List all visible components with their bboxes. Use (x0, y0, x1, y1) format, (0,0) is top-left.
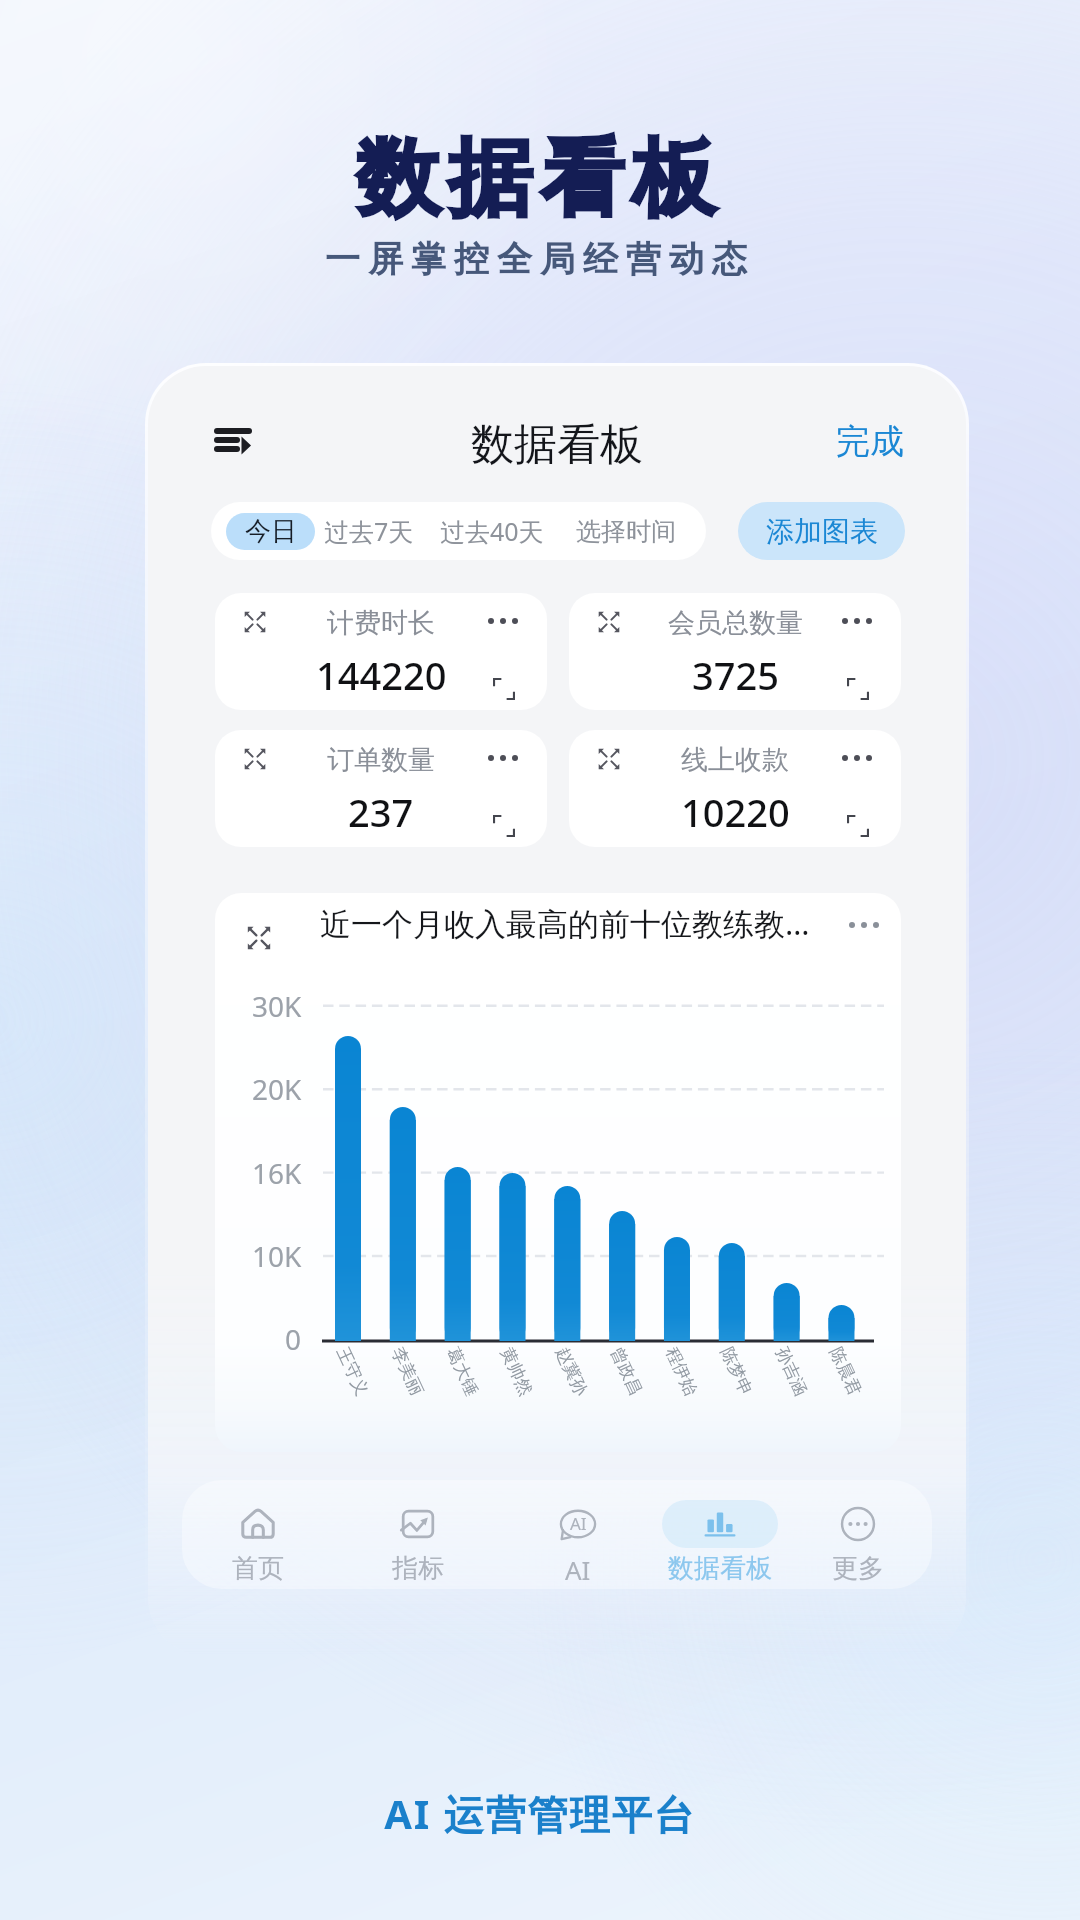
staticText: 144220 (316, 649, 447, 701)
button[interactable]: 选择时间 (570, 502, 682, 560)
staticText: 30K (252, 987, 302, 1025)
staticText: 过去7天 (324, 514, 414, 548)
staticText: 一屏掌控全局经营动态 (0, 237, 1080, 281)
staticText: 线上收款 (681, 743, 789, 777)
staticText: AI (565, 1552, 591, 1587)
button[interactable]: 更多 (783, 1480, 932, 1589)
button[interactable]: AI (503, 1480, 653, 1589)
button[interactable]: 线上收款 (569, 730, 901, 847)
button[interactable]: Menu (205, 416, 263, 464)
staticText: 曾政昌 (606, 1344, 647, 1399)
staticText: 数据看板 (0, 126, 1080, 232)
staticText: 计费时长 (327, 606, 435, 640)
button[interactable]: 订单数量 (215, 730, 547, 847)
button[interactable]: 会员总数量 (569, 593, 901, 710)
staticText: 10220 (681, 786, 790, 838)
staticText: 陈晨君 (825, 1344, 866, 1399)
staticText: 16K (252, 1154, 302, 1192)
button[interactable]: 近一个月收入最高的前十位教练教… (215, 893, 901, 1452)
button[interactable]: 过去40天 (434, 502, 550, 560)
button[interactable]: 计费时长 (215, 593, 547, 710)
button[interactable]: 添加图表 (738, 502, 905, 560)
staticText: 今日 (245, 515, 297, 548)
staticText: 10K (252, 1237, 302, 1275)
staticText: 赵冀孙 (551, 1344, 592, 1399)
staticText: 陈梦申 (716, 1344, 757, 1399)
staticText: 订单数量 (327, 743, 435, 777)
staticText: 葛大锤 (442, 1344, 483, 1399)
staticText: 首页 (232, 1552, 284, 1585)
staticText: 近一个月收入最高的前十位教练教… (320, 902, 810, 944)
staticText: 0 (285, 1320, 302, 1358)
staticText: 20K (252, 1070, 302, 1108)
button[interactable]: 今日 (226, 513, 315, 550)
staticText: 数据看板 (668, 1552, 772, 1585)
staticText: 过去40天 (440, 514, 544, 548)
staticText: 程伊始 (661, 1344, 702, 1399)
button[interactable]: 指标 (343, 1480, 493, 1589)
button[interactable]: 数据看板 (645, 1480, 795, 1589)
staticText: 添加图表 (766, 514, 878, 549)
staticText: AI (570, 1512, 587, 1535)
staticText: 指标 (392, 1552, 444, 1585)
staticText: 孙吉涵 (771, 1344, 812, 1399)
button[interactable]: 完成 (820, 414, 920, 468)
staticText: 会员总数量 (668, 606, 803, 640)
staticText: 黄帅然 (496, 1344, 537, 1399)
staticText: 237 (348, 786, 414, 838)
staticText: 王守义 (332, 1344, 373, 1399)
button[interactable]: 过去7天 (318, 502, 420, 560)
staticText: 数据看板 (148, 418, 966, 472)
staticText: 完成 (836, 420, 904, 463)
staticText: 李美丽 (387, 1344, 428, 1399)
staticText: 更多 (832, 1552, 884, 1585)
button[interactable]: 首页 (183, 1480, 333, 1589)
staticText: AI 运营管理平台 (0, 1786, 1080, 1841)
staticText: 3725 (692, 649, 779, 701)
staticText: 选择时间 (576, 516, 676, 547)
